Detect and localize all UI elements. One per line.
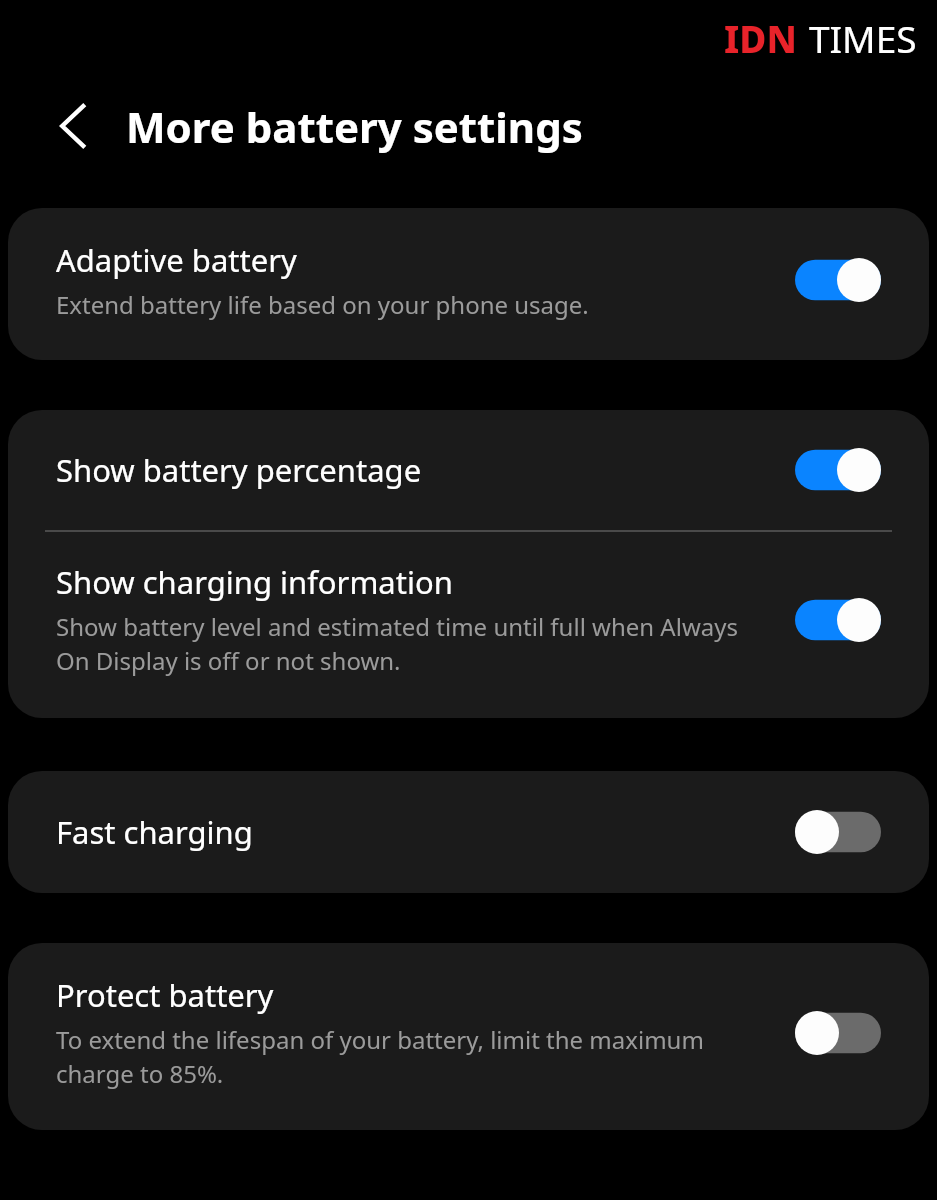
- button[interactable]: Back: [40, 93, 106, 159]
- staticText: Show battery level and estimated time un…: [56, 610, 777, 678]
- button[interactable]: Show battery percentage: [8, 410, 929, 530]
- staticText: To extend the lifespan of your battery, …: [56, 1023, 777, 1091]
- button[interactable]: Show battery percentage: [795, 448, 881, 492]
- staticText: IDN: [724, 13, 797, 63]
- button[interactable]: Adaptive battery: [8, 208, 929, 360]
- button[interactable]: Fast charging: [8, 771, 929, 893]
- button[interactable]: Protect battery: [795, 1011, 881, 1055]
- staticText: Adaptive battery: [56, 239, 297, 281]
- staticText: More battery settings: [126, 98, 583, 155]
- button[interactable]: Fast charging: [795, 810, 881, 854]
- staticText: Show battery percentage: [56, 449, 422, 491]
- staticText: Fast charging: [56, 811, 253, 853]
- button[interactable]: Show charging information: [795, 598, 881, 642]
- button[interactable]: Protect battery: [8, 943, 929, 1130]
- staticText: Protect battery: [56, 974, 274, 1016]
- button[interactable]: Adaptive battery: [795, 258, 881, 302]
- button[interactable]: Show charging information: [8, 532, 929, 718]
- staticText: Show charging information: [56, 561, 453, 603]
- staticText: TIMES: [809, 13, 917, 63]
- staticText: Extend battery life based on your phone …: [56, 288, 589, 321]
